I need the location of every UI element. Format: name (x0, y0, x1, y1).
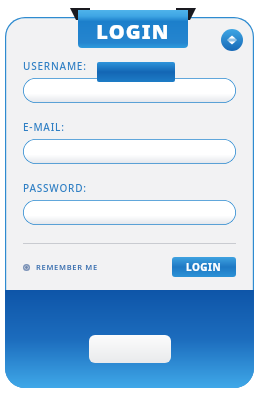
button[interactable]: Password (23, 200, 236, 225)
staticText: REMEMBER ME (36, 262, 98, 272)
button[interactable]: LOGIN (172, 257, 236, 277)
staticText: PASSWORD: (23, 181, 87, 195)
button[interactable]: Expand (221, 29, 243, 51)
staticText: LOGIN (186, 260, 222, 274)
button[interactable]: Username (23, 78, 236, 103)
button[interactable]: E-mail (23, 139, 236, 164)
staticText: LOGIN (96, 18, 170, 45)
button[interactable]: REMEMBER ME (23, 262, 104, 272)
staticText: USERNAME: (23, 59, 87, 73)
button[interactable]: Submit (89, 335, 171, 363)
staticText: E-MAIL: (23, 120, 65, 134)
button[interactable]: LOGIN (78, 10, 188, 48)
